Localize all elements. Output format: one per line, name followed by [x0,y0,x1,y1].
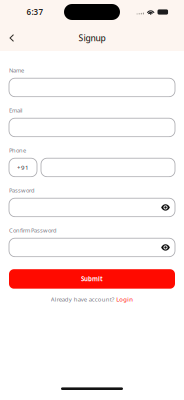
staticText: Signup [78,32,105,44]
button[interactable]: Show Confirm Password [158,238,172,257]
staticText: Confirm Password [9,226,57,234]
button[interactable]: Already have account? [9,295,175,303]
staticText: Submit [81,275,103,283]
staticText: Email [9,106,22,114]
staticText: Login [116,295,133,303]
staticText: Name [9,66,24,74]
button[interactable]: Show Password [158,198,172,217]
button[interactable]: Submit [9,269,175,289]
staticText: Already have account? [51,295,115,303]
staticText: Password [9,186,35,194]
staticText: Phone [9,146,26,154]
staticText: +91 [17,163,29,172]
staticText: 6:37 [26,7,43,17]
button[interactable]: Back [4,29,20,47]
